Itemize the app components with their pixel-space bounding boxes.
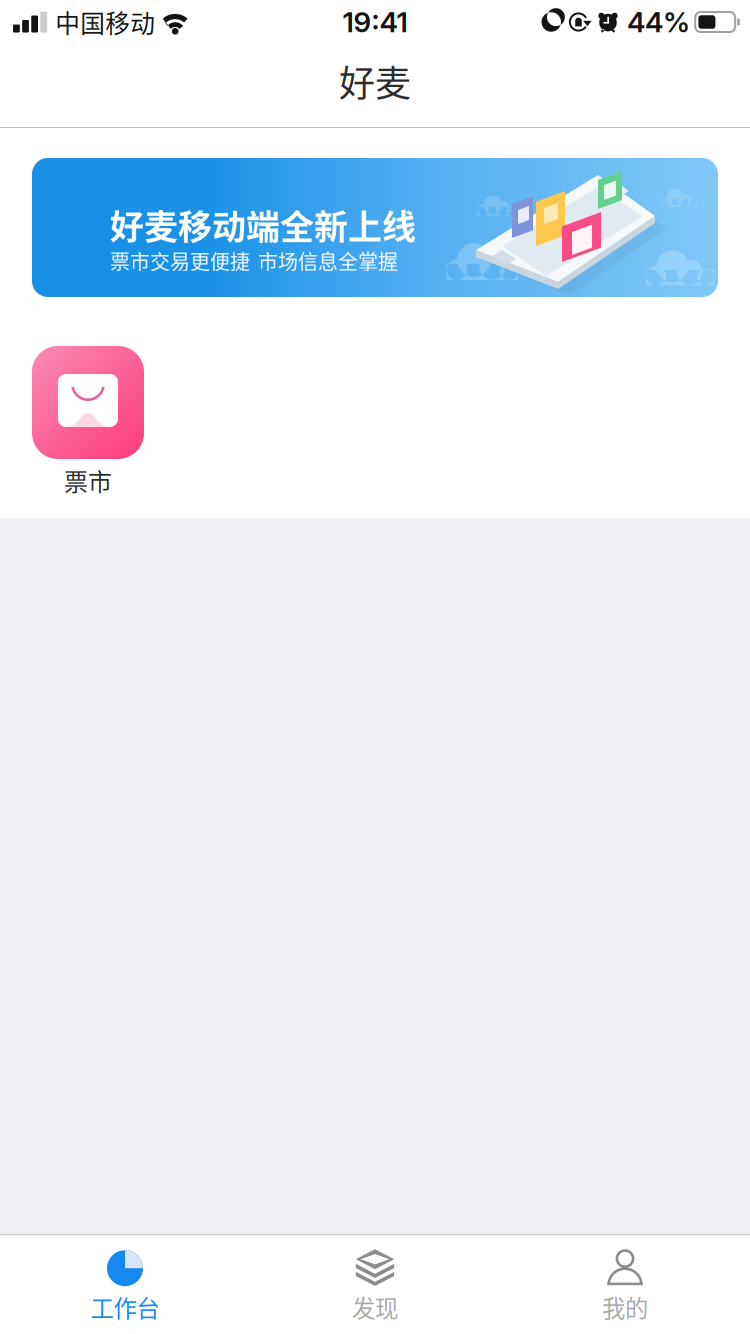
staticText: 19:41 — [342, 5, 407, 39]
staticText: 发现 — [352, 1290, 398, 1324]
staticText: 票市 — [64, 463, 112, 498]
button[interactable]: 发现 — [250, 1234, 500, 1334]
staticText: 工作台 — [90, 1290, 159, 1324]
staticText: 我的 — [602, 1290, 648, 1324]
button[interactable]: 票市 — [32, 346, 144, 498]
staticText: 好麦 — [339, 55, 411, 107]
staticText: 好麦移动端全新上线 — [110, 200, 416, 249]
button[interactable]: 我的 — [500, 1234, 750, 1334]
button[interactable]: 好麦移动端全新上线 — [32, 158, 718, 297]
staticText: 中国移动 — [55, 4, 155, 40]
staticText: 44% — [627, 5, 690, 39]
button[interactable]: 工作台 — [0, 1234, 250, 1334]
staticText: 票市交易更便捷 市场信息全掌握 — [110, 246, 398, 275]
